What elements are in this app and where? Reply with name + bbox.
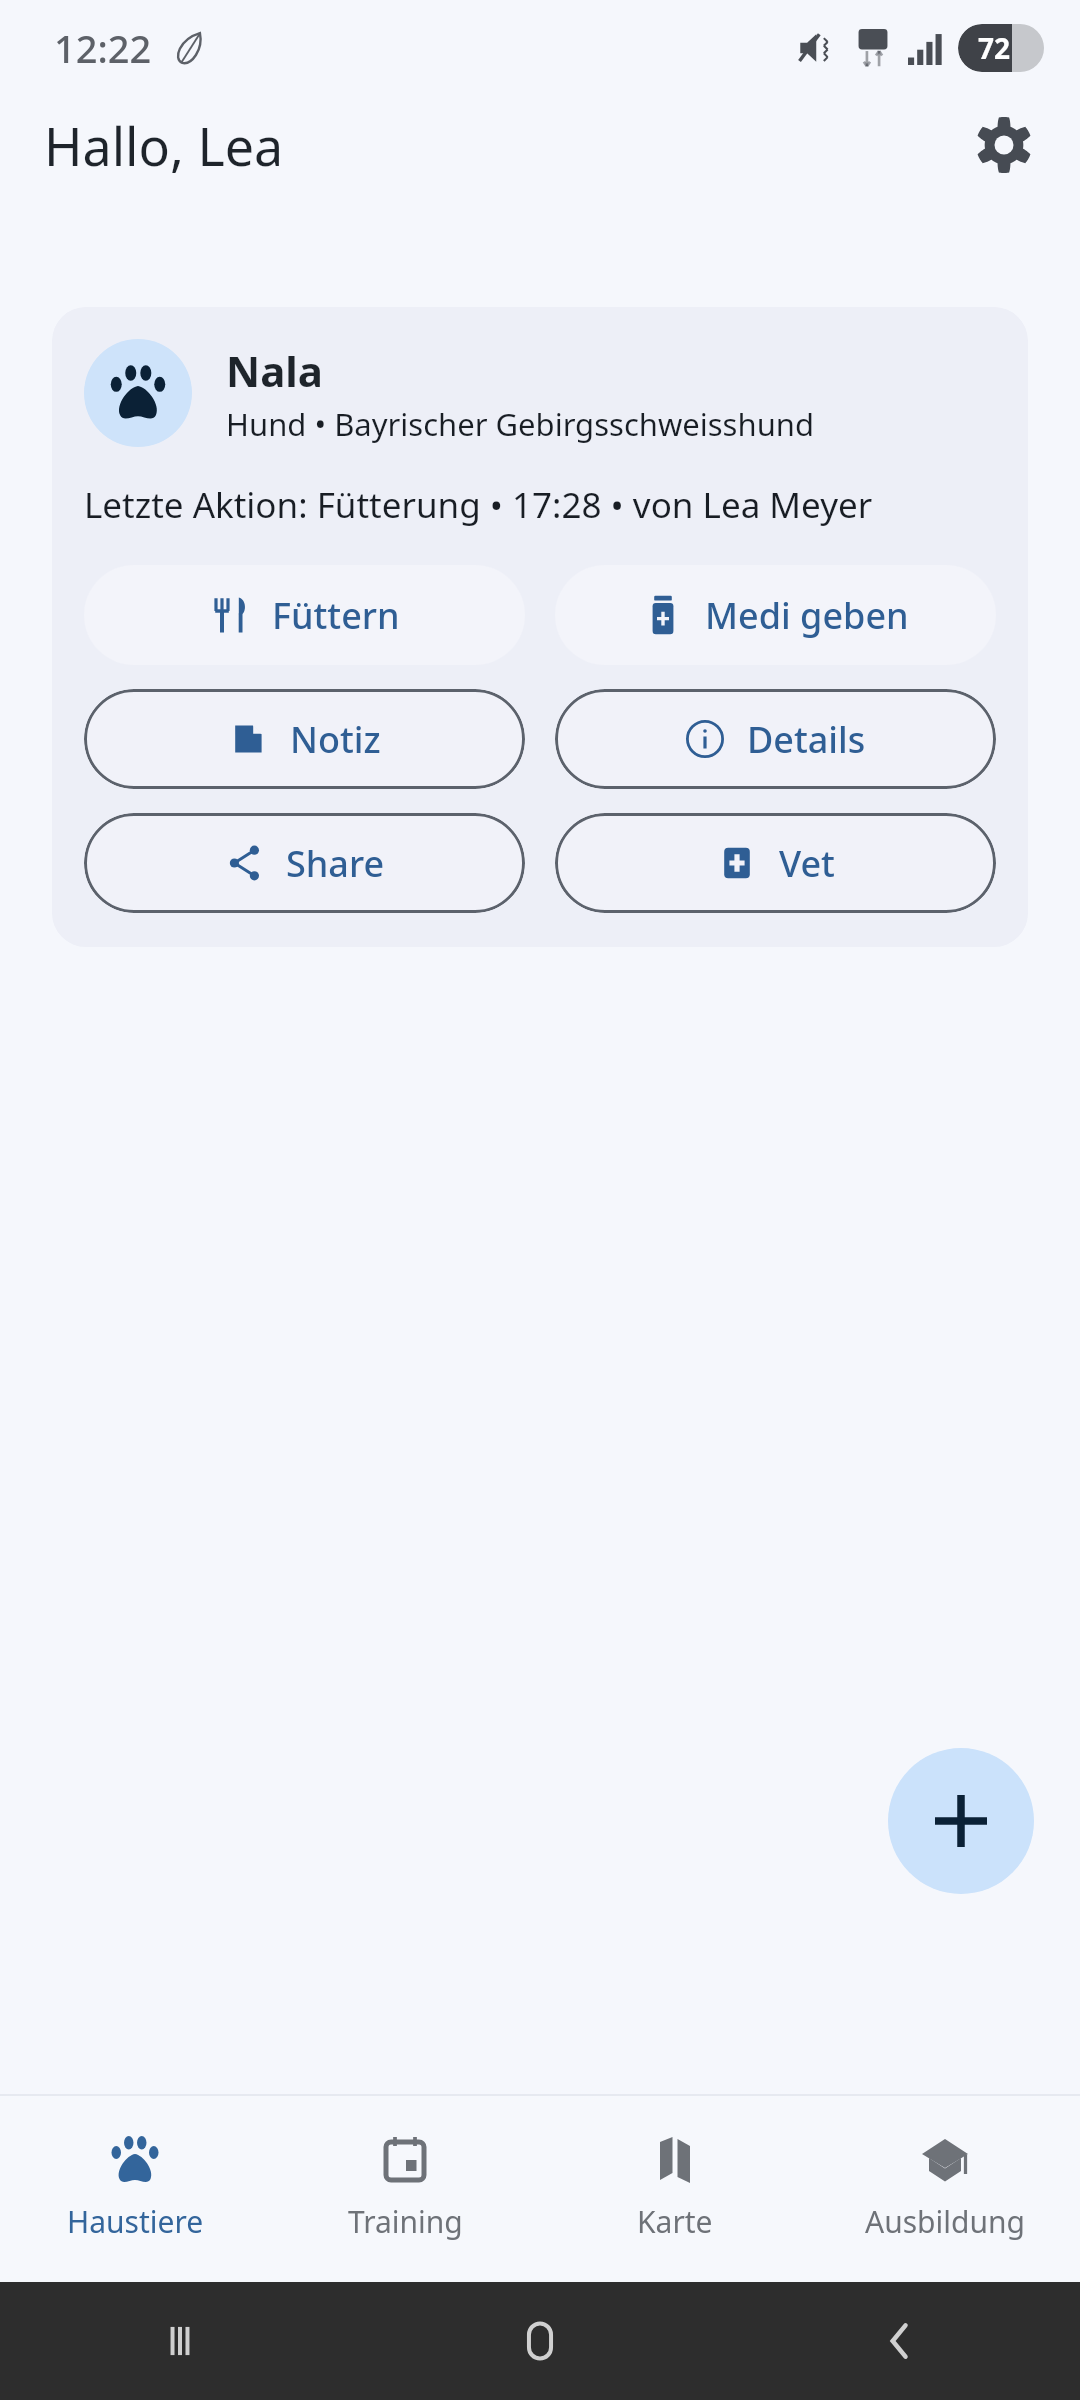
staticText: Hund • Bayrischer Gebirgsschweisshund [226, 403, 815, 445]
staticText: Nala [226, 342, 323, 399]
staticText: Medi geben [705, 591, 909, 640]
staticText: Vet [779, 839, 835, 888]
staticText: 12:22 [54, 22, 152, 74]
button[interactable]: Share [84, 813, 525, 913]
button[interactable]: Notiz [84, 689, 525, 789]
button[interactable]: Medi geben [555, 565, 996, 665]
staticText: Füttern [272, 591, 400, 640]
button[interactable]: Hinzufügen [888, 1748, 1034, 1894]
staticText: Details [747, 715, 866, 764]
staticText: Hallo, Lea [44, 110, 284, 181]
button[interactable]: Haustiere [0, 2094, 270, 2282]
button[interactable]: Training [270, 2094, 540, 2282]
staticText: Training [348, 2201, 463, 2242]
button[interactable]: Einstellungen [956, 97, 1052, 193]
button[interactable]: Recents [0, 2282, 360, 2400]
button[interactable]: Füttern [84, 565, 525, 665]
button[interactable]: Details [555, 689, 996, 789]
button[interactable]: Karte [540, 2094, 810, 2282]
button[interactable]: Vet [555, 813, 996, 913]
staticText: Haustiere [67, 2201, 204, 2242]
staticText: Share [286, 839, 385, 888]
button[interactable]: Back [720, 2282, 1080, 2400]
staticText: Karte [637, 2201, 713, 2242]
button[interactable]: Ausbildung [810, 2094, 1080, 2282]
staticText: Letzte Aktion: Fütterung • 17:28 • von L… [84, 481, 873, 529]
staticText: 72 [978, 29, 1011, 67]
staticText: Ausbildung [865, 2201, 1025, 2242]
staticText: Notiz [290, 715, 381, 764]
button[interactable]: Home [360, 2282, 720, 2400]
